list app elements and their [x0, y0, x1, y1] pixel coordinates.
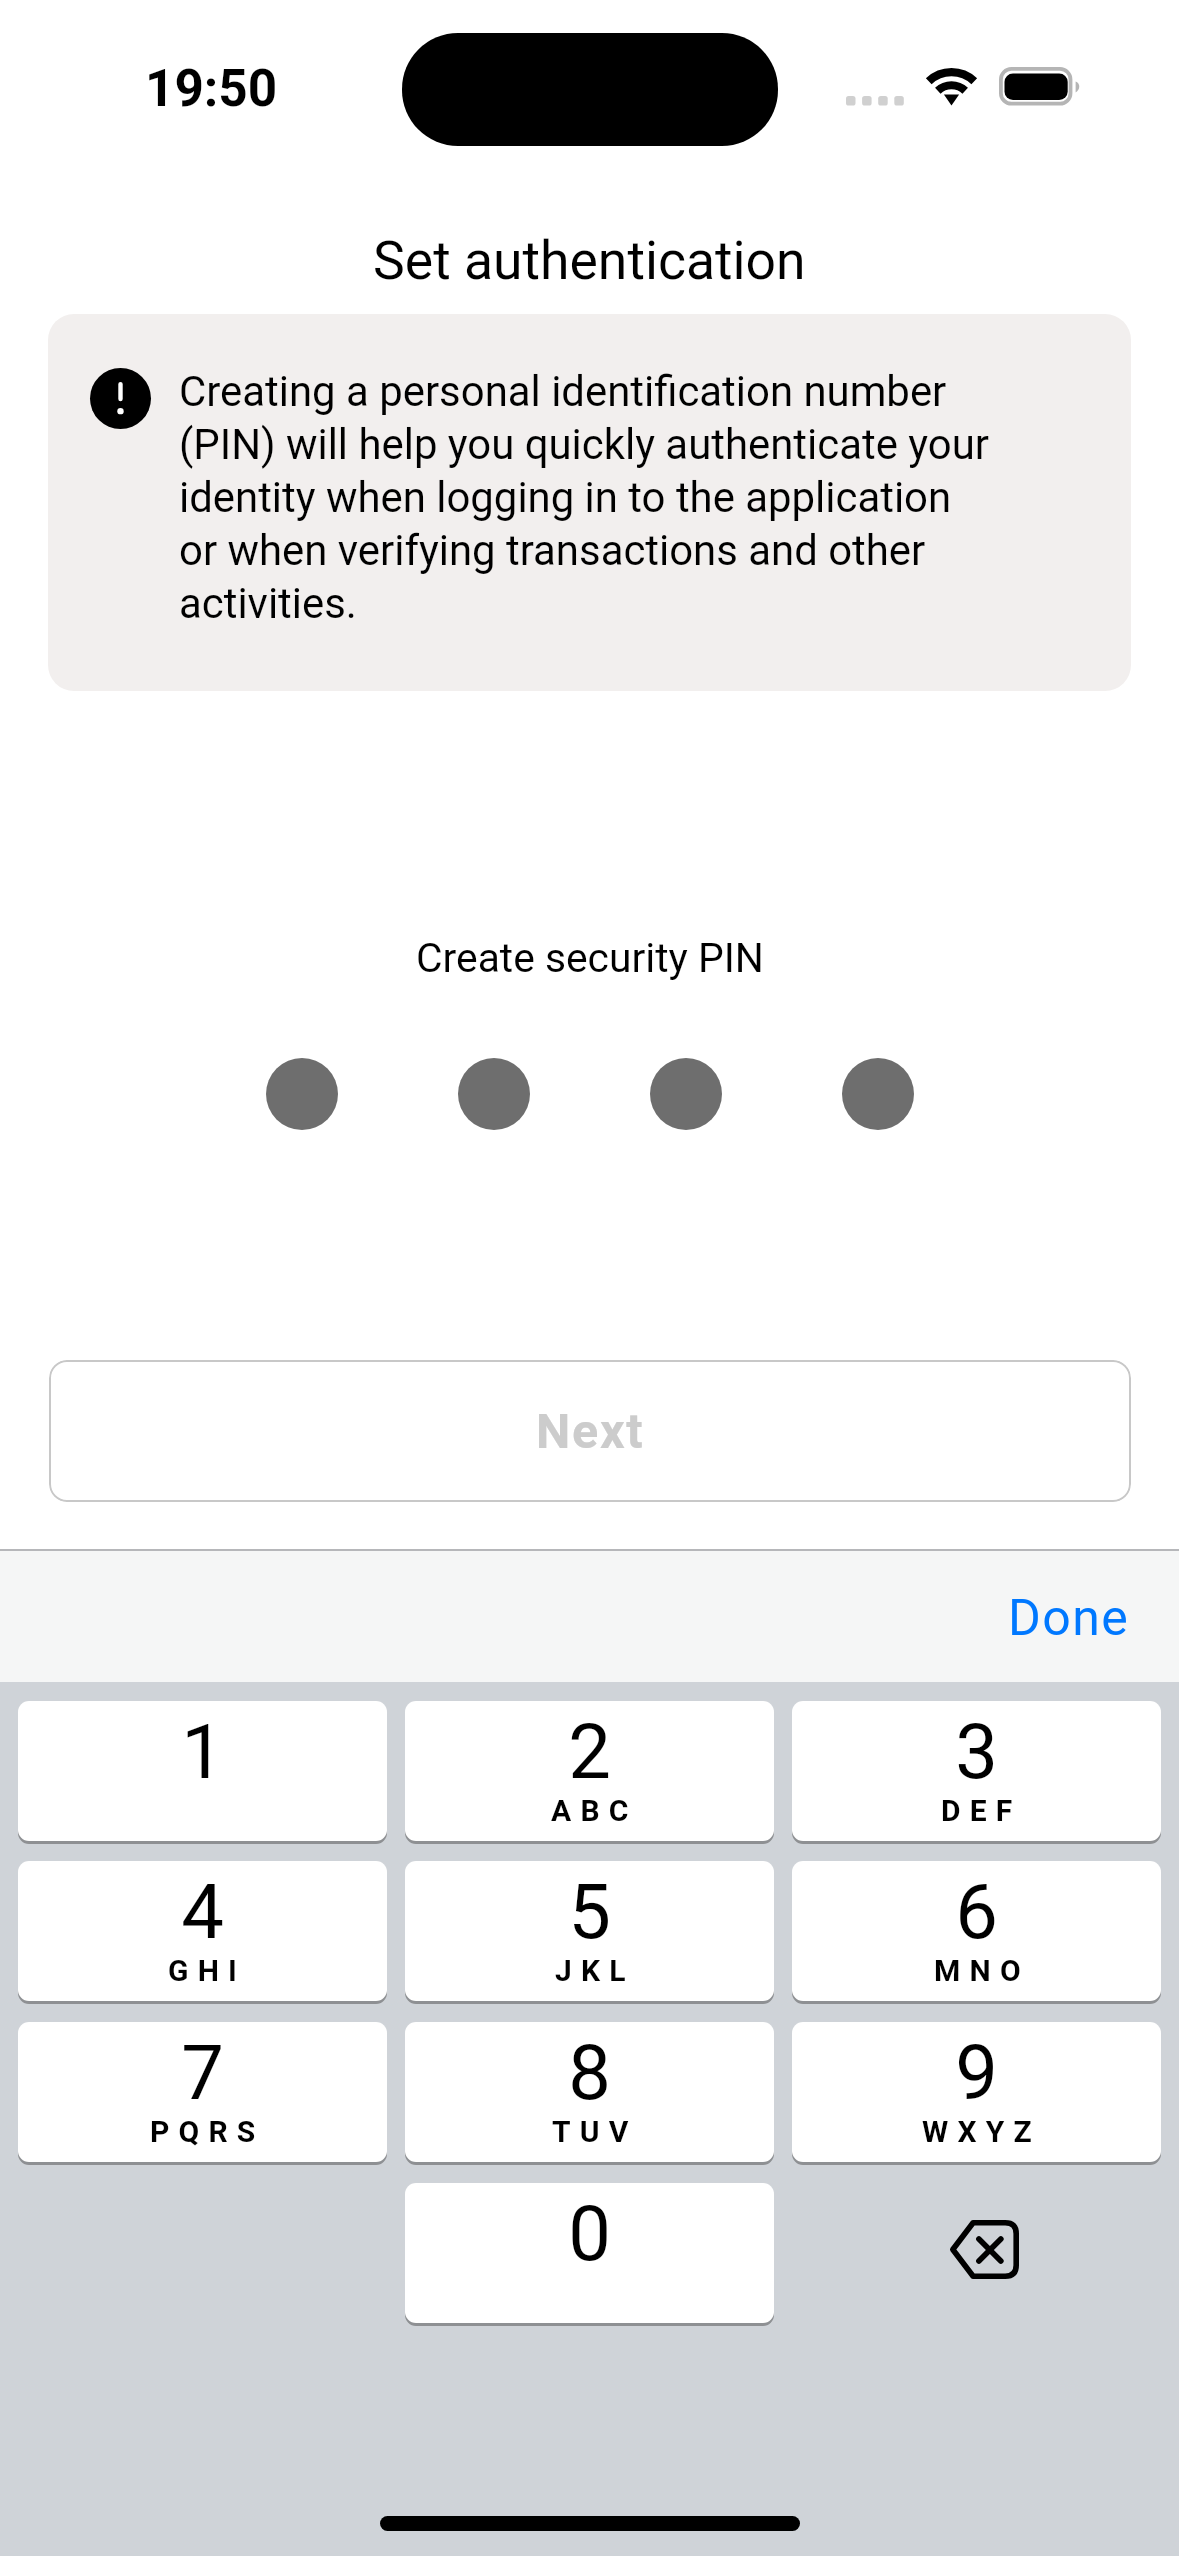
button[interactable]: 7: [18, 2022, 387, 2162]
button[interactable]: Next: [49, 1360, 1131, 1502]
button[interactable]: 3: [792, 1701, 1161, 1841]
button[interactable]: Backspace: [792, 2183, 1161, 2323]
staticText: TUV: [552, 2114, 638, 2149]
staticText: Next: [536, 1403, 645, 1460]
staticText: 7: [181, 2028, 224, 2117]
staticText: 2: [568, 1707, 611, 1796]
staticText: Done: [1008, 1589, 1130, 1648]
staticText: 19:50: [145, 58, 278, 118]
button[interactable]: 6: [792, 1861, 1161, 2001]
staticText: Set authentication: [373, 229, 806, 292]
staticText: DEF: [941, 1793, 1022, 1828]
button[interactable]: 0: [405, 2183, 774, 2323]
staticText: 0: [568, 2189, 611, 2278]
staticText: ABC: [551, 1793, 638, 1828]
staticText: JKL: [555, 1953, 635, 1988]
staticText: GHI: [168, 1953, 247, 1988]
button[interactable]: Done: [984, 1575, 1154, 1662]
staticText: PQRS: [150, 2114, 265, 2149]
button[interactable]: 4: [18, 1861, 387, 2001]
button[interactable]: 2: [405, 1701, 774, 1841]
staticText: Creating a personal identification numbe…: [179, 367, 994, 628]
staticText: 5: [568, 1867, 611, 1956]
staticText: Create security PIN: [416, 934, 764, 982]
staticText: WXYZ: [922, 2114, 1041, 2149]
staticText: 6: [955, 1867, 998, 1956]
staticText: 1: [181, 1707, 224, 1796]
button[interactable]: 9: [792, 2022, 1161, 2162]
button[interactable]: 5: [405, 1861, 774, 2001]
button[interactable]: 8: [405, 2022, 774, 2162]
button[interactable]: 1: [18, 1701, 387, 1841]
staticText: MNO: [934, 1953, 1030, 1988]
staticText: 8: [568, 2028, 611, 2117]
staticText: 9: [955, 2028, 998, 2117]
staticText: 4: [181, 1867, 224, 1956]
staticText: 3: [955, 1707, 998, 1796]
